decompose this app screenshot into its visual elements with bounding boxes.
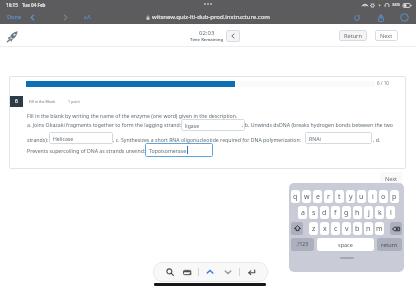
staticText: m bbox=[376, 224, 383, 234]
button[interactable]: ligase bbox=[181, 119, 245, 131]
button[interactable]: w bbox=[302, 190, 311, 203]
button[interactable]: z bbox=[309, 222, 318, 235]
button[interactable]: y bbox=[346, 190, 355, 203]
staticText: A bbox=[87, 13, 91, 21]
button[interactable]: t bbox=[335, 190, 344, 203]
button[interactable]: Next bbox=[380, 172, 402, 184]
button[interactable]: p bbox=[390, 190, 399, 203]
button[interactable]: return bbox=[377, 238, 402, 251]
staticText: c bbox=[334, 224, 338, 234]
staticText: A bbox=[84, 15, 87, 21]
button[interactable]: e bbox=[313, 190, 322, 203]
staticText: 16:15 bbox=[6, 2, 18, 8]
button[interactable]: Return bbox=[339, 30, 367, 41]
staticText: .?123 bbox=[296, 241, 309, 248]
button[interactable]: g bbox=[342, 206, 351, 219]
button[interactable]: Helicase bbox=[49, 132, 113, 144]
staticText: n bbox=[366, 224, 371, 234]
button[interactable]: Page settings bbox=[82, 11, 93, 23]
button[interactable]: k bbox=[375, 206, 384, 219]
button[interactable]: space bbox=[317, 238, 374, 251]
button[interactable]: i bbox=[368, 190, 377, 203]
button[interactable]: Collapse bbox=[226, 30, 240, 42]
staticText: Topoisomerase bbox=[149, 147, 187, 154]
button[interactable]: u bbox=[357, 190, 366, 203]
button[interactable]: Share bbox=[374, 11, 387, 24]
button[interactable]: r bbox=[324, 190, 333, 203]
staticText: r bbox=[327, 192, 330, 202]
button[interactable]: c bbox=[331, 222, 340, 235]
staticText: Prevents supercoiling of DNA as strands … bbox=[27, 147, 146, 154]
staticText: w bbox=[304, 192, 310, 202]
staticText: d bbox=[322, 208, 327, 218]
staticText: k bbox=[378, 208, 382, 218]
staticText: z bbox=[312, 224, 316, 234]
staticText: Next bbox=[380, 32, 393, 40]
staticText: , d. bbox=[373, 136, 381, 143]
button[interactable]: Topoisomerase bbox=[145, 143, 213, 157]
staticText: Return bbox=[344, 32, 362, 40]
staticText: f bbox=[334, 208, 337, 218]
staticText: t bbox=[338, 192, 341, 202]
button[interactable]: l bbox=[386, 206, 395, 219]
staticText: 36% bbox=[392, 2, 401, 8]
staticText: y bbox=[349, 192, 353, 202]
button[interactable]: Hide keyboard bbox=[245, 266, 257, 278]
button[interactable]: Back bbox=[27, 12, 38, 23]
button[interactable]: Search bbox=[164, 266, 176, 278]
button[interactable]: f bbox=[331, 206, 340, 219]
staticText: strands): bbox=[27, 136, 49, 143]
staticText: 1 point bbox=[68, 99, 80, 104]
button[interactable]: n bbox=[364, 222, 373, 235]
button[interactable]: s bbox=[309, 206, 318, 219]
staticText: v bbox=[345, 224, 349, 234]
staticText: h bbox=[355, 208, 360, 218]
button[interactable]: v bbox=[342, 222, 351, 235]
staticText: 6 bbox=[15, 98, 18, 105]
staticText: Tue 04 Feb bbox=[22, 2, 46, 8]
button[interactable]: x bbox=[320, 222, 329, 235]
button[interactable]: Reload bbox=[350, 11, 363, 24]
staticText: 6 / 10 bbox=[377, 80, 389, 86]
button[interactable]: q bbox=[291, 190, 300, 203]
staticText: 02:03 bbox=[199, 29, 215, 37]
staticText: RNAi bbox=[309, 135, 321, 142]
button[interactable]: Delete bbox=[390, 222, 402, 235]
staticText: a bbox=[301, 208, 305, 218]
staticText: g bbox=[344, 208, 349, 218]
button[interactable]: Autofill bbox=[181, 266, 193, 278]
staticText: l bbox=[390, 208, 392, 218]
staticText: , b. Unwinds dsDNA (breaks hydrogen bond… bbox=[242, 121, 393, 128]
staticText: o bbox=[381, 192, 386, 202]
button[interactable]: Done bbox=[5, 11, 24, 23]
staticText: Time Remaining bbox=[190, 37, 224, 43]
staticText: j bbox=[368, 208, 370, 218]
button[interactable]: Next field bbox=[222, 266, 234, 278]
staticText: Next bbox=[385, 175, 398, 182]
staticText: x bbox=[323, 224, 327, 234]
staticText: q bbox=[293, 192, 298, 202]
staticText: Fill in the Blank bbox=[29, 99, 56, 104]
button[interactable]: d bbox=[320, 206, 329, 219]
button[interactable]: a bbox=[298, 206, 307, 219]
staticText: , c. Synthesizes a short RNA oligonucleo… bbox=[113, 136, 301, 143]
button[interactable]: j bbox=[364, 206, 373, 219]
button[interactable]: RNAi bbox=[305, 132, 372, 144]
staticText: return bbox=[381, 241, 398, 248]
button[interactable]: o bbox=[379, 190, 388, 203]
button[interactable]: m bbox=[375, 222, 384, 235]
button[interactable]: h bbox=[353, 206, 362, 219]
staticText: Done bbox=[7, 13, 22, 21]
staticText: s bbox=[312, 208, 316, 218]
button[interactable]: Tabs bbox=[398, 11, 411, 24]
button[interactable]: Forward bbox=[60, 12, 71, 23]
staticText: Fill in the blank by writing the name of… bbox=[27, 112, 238, 119]
staticText: e bbox=[316, 192, 320, 202]
button[interactable]: Quizzes bbox=[5, 29, 19, 43]
button[interactable]: b bbox=[353, 222, 362, 235]
button[interactable]: .?123 bbox=[291, 238, 314, 251]
button[interactable]: Previous field bbox=[204, 266, 216, 278]
staticText: witsnew.quiz-lti-dub-prod.instructure.co… bbox=[152, 13, 270, 21]
button[interactable]: Shift bbox=[291, 222, 303, 235]
button[interactable]: Next bbox=[375, 30, 398, 41]
